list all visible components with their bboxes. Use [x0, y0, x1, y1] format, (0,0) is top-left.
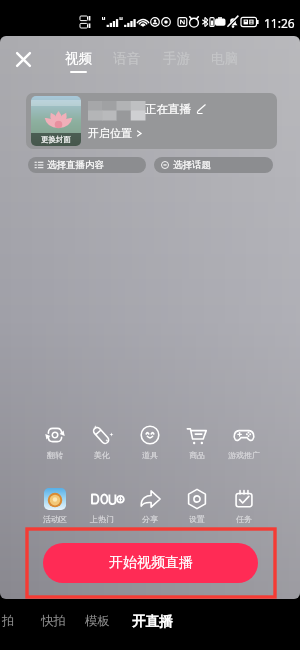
staticText: 正在直播	[145, 102, 191, 116]
staticText: 电脑	[211, 50, 238, 67]
button[interactable]: 更换封面	[31, 96, 81, 146]
staticText: 商品	[189, 450, 205, 460]
button[interactable]: 开始视频直播	[43, 543, 258, 583]
staticText: 模板	[85, 613, 110, 629]
staticText: 选择话题	[173, 159, 211, 171]
staticText: 选择直播内容	[47, 159, 104, 171]
staticText: 美化	[94, 450, 110, 460]
button[interactable]: 电脑	[206, 36, 242, 80]
staticText: 任务	[236, 514, 252, 524]
button[interactable]: 语音	[108, 36, 144, 80]
button[interactable]: 上热门	[78, 488, 125, 524]
staticText: 上热门	[90, 514, 114, 524]
button[interactable]: 活动区	[31, 488, 78, 524]
button[interactable]: 视频	[60, 36, 96, 80]
button[interactable]: 游戏推广	[220, 424, 267, 460]
button[interactable]: 编辑	[196, 103, 208, 115]
button[interactable]: 商品	[173, 424, 220, 460]
button[interactable]: Close	[9, 45, 38, 74]
staticText: 快拍	[41, 613, 66, 629]
staticText: 更换封面	[41, 135, 71, 144]
button[interactable]: 手游	[158, 36, 194, 80]
staticText: 拍	[2, 613, 15, 629]
button[interactable]: 选择话题	[154, 157, 273, 173]
staticText: 11:26	[264, 15, 295, 31]
staticText: 道具	[142, 450, 158, 460]
button[interactable]: 任务	[220, 488, 267, 524]
staticText: 活动区	[43, 514, 67, 524]
button[interactable]: 美化	[78, 424, 125, 460]
button[interactable]: 拍	[0, 606, 32, 636]
staticText: 语音	[113, 50, 140, 67]
button[interactable]: 设置	[173, 488, 220, 524]
staticText: 视频	[65, 50, 92, 67]
staticText: 开始视频直播	[109, 554, 193, 572]
staticText: 游戏推广	[228, 450, 260, 460]
button[interactable]: 翻转	[31, 424, 78, 460]
button[interactable]: 模板	[73, 606, 121, 636]
staticText: 分享	[142, 514, 158, 524]
button[interactable]: 开启位置	[88, 126, 143, 140]
button[interactable]: 快拍	[29, 606, 77, 636]
staticText: 开直播	[132, 613, 173, 630]
staticText: 手游	[163, 50, 190, 67]
staticText: 设置	[189, 514, 205, 524]
button[interactable]: 选择直播内容	[28, 157, 146, 173]
staticText: 翻转	[47, 450, 63, 460]
button[interactable]: 分享	[126, 488, 173, 524]
button[interactable]: 开直播	[128, 606, 176, 636]
staticText: 开启位置	[88, 126, 132, 140]
button[interactable]: 道具	[126, 424, 173, 460]
